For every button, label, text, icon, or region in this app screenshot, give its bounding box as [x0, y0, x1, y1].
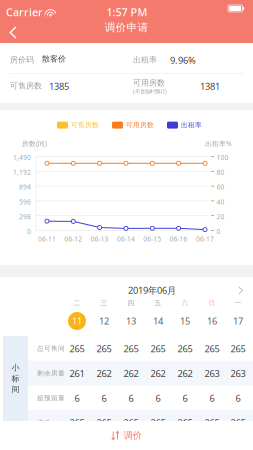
staticText: 6 [155, 392, 160, 404]
staticText: 265 [230, 416, 245, 429]
staticText: 超预留量 [37, 394, 65, 402]
staticText: 265 [204, 342, 219, 355]
staticText: 可售房数 [10, 81, 42, 91]
staticText: 17 [233, 315, 243, 327]
staticText: 265 [177, 416, 192, 429]
staticText: 06-12 [64, 234, 82, 243]
staticText: 2019年06月 [128, 284, 176, 296]
staticText: 一 [234, 299, 241, 307]
staticText: 20 [216, 212, 224, 221]
button[interactable]: 11 [65, 311, 89, 331]
staticText: 265 [69, 416, 84, 429]
staticText: 265 [230, 342, 245, 355]
staticText: 三 [100, 299, 107, 307]
staticText: 可用房数 [126, 121, 154, 129]
staticText: (不含临时预订) [133, 88, 167, 95]
staticText: 6 [101, 392, 106, 404]
staticText: 100 [216, 153, 228, 162]
staticText: 11 [72, 315, 82, 327]
staticText: 265 [96, 416, 111, 429]
staticText: 出租率% [205, 139, 232, 148]
staticText: 06-16 [170, 234, 188, 243]
staticText: 265 [69, 342, 84, 355]
staticText: 出租率 [133, 55, 157, 65]
staticText: 调价申请 [104, 21, 148, 34]
staticText: 6 [209, 392, 214, 404]
staticText: 1:57 PM [106, 5, 147, 19]
staticText: 596 [19, 197, 31, 206]
button[interactable]: Back [0, 22, 29, 43]
staticText: 265 [177, 342, 192, 355]
staticText: 6 [128, 392, 133, 404]
staticText: 0 [216, 227, 220, 236]
staticText: 265 [123, 342, 138, 355]
staticText: 1,192 [13, 168, 31, 177]
staticText: 总可售间 [37, 344, 65, 353]
staticText: 0 [27, 227, 31, 236]
staticText: 9.96% [170, 54, 196, 66]
staticText: 265 [150, 416, 165, 429]
button[interactable]: 13 [119, 311, 143, 331]
staticText: 06-17 [196, 234, 214, 243]
staticText: 日 [208, 299, 215, 307]
staticText: 五 [154, 299, 161, 307]
staticText: 剩余房量 [37, 369, 65, 377]
staticText: 265 [204, 416, 219, 429]
staticText: 房价码 [10, 55, 34, 65]
staticText: 可用房数 [133, 78, 165, 88]
staticText: 1385 [49, 80, 69, 92]
button[interactable]: 调价 [0, 421, 253, 450]
staticText: 894 [19, 183, 31, 191]
staticText: 261 [69, 367, 84, 380]
staticText: 房数(间) [22, 139, 47, 148]
staticText: 标 [11, 374, 19, 383]
staticText: 均价 [37, 418, 51, 427]
staticText: 6 [182, 392, 187, 404]
staticText: 调价 [123, 430, 141, 441]
staticText: 15 [180, 315, 190, 327]
staticText: Carrier [6, 5, 43, 19]
staticText: 16 [207, 315, 217, 327]
staticText: 六 [181, 299, 188, 307]
button[interactable]: 15 [173, 311, 197, 331]
staticText: 06-13 [91, 234, 109, 243]
staticText: 262 [96, 367, 111, 380]
staticText: 间 [11, 384, 19, 394]
staticText: 60 [216, 183, 224, 191]
staticText: 06-11 [38, 234, 56, 243]
staticText: 06-14 [117, 234, 135, 243]
staticText: 263 [204, 367, 219, 380]
staticText: 265 [96, 342, 111, 355]
staticText: 散客价 [42, 54, 66, 64]
button[interactable]: 17 [226, 311, 250, 331]
staticText: 80 [216, 168, 224, 177]
button[interactable]: 12 [92, 311, 116, 331]
staticText: 1,490 [13, 153, 31, 162]
button[interactable]: 16 [200, 311, 224, 331]
staticText: 298 [19, 212, 31, 221]
staticText: 263 [230, 367, 245, 380]
button[interactable]: 14 [146, 311, 170, 331]
staticText: 6 [235, 392, 240, 404]
staticText: 265 [123, 416, 138, 429]
staticText: 40 [216, 197, 224, 206]
staticText: 13 [126, 315, 136, 327]
staticText: 14 [153, 315, 163, 327]
staticText: 1381 [200, 80, 220, 92]
staticText: 262 [177, 367, 192, 380]
staticText: 6 [74, 392, 79, 404]
staticText: 四 [127, 299, 134, 307]
staticText: 出租率 [181, 121, 202, 129]
staticText: 06-15 [143, 234, 161, 243]
staticText: 262 [123, 367, 138, 380]
staticText: 12 [99, 315, 109, 327]
staticText: 265 [150, 342, 165, 355]
staticText: 262 [150, 367, 165, 380]
staticText: 可售房数 [71, 121, 99, 129]
staticText: 二 [73, 299, 80, 307]
button[interactable]: Next month [231, 279, 250, 302]
staticText: 小 [11, 363, 19, 373]
